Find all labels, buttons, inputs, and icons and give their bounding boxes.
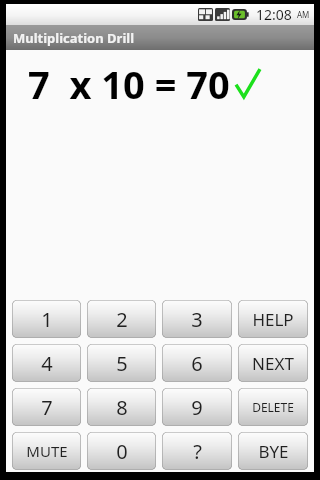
button[interactable]: BYE (238, 432, 308, 470)
staticText: MUTE (26, 441, 68, 461)
staticText: BYE (258, 440, 289, 463)
button[interactable]: 6 (162, 344, 232, 382)
button[interactable]: HELP (238, 300, 308, 338)
staticText: NEXT (252, 352, 294, 375)
staticText: DELETE (252, 399, 294, 415)
button[interactable]: NEXT (238, 344, 308, 382)
staticText: 7 x 10 = 70 (28, 58, 230, 110)
staticText: AM (297, 9, 310, 20)
staticText: ? (193, 438, 202, 465)
button[interactable]: 7 (12, 388, 81, 426)
button[interactable]: MUTE (12, 432, 81, 470)
button[interactable]: 3 (162, 300, 232, 338)
staticText: 4 (41, 350, 53, 377)
button[interactable]: 8 (87, 388, 156, 426)
staticText: 12:08 (256, 5, 292, 24)
staticText: 2 (116, 306, 128, 333)
button[interactable]: 2 (87, 300, 156, 338)
staticText: 5 (116, 350, 128, 377)
staticText: 9 (191, 394, 203, 421)
button[interactable]: 9 (162, 388, 232, 426)
button[interactable]: 4 (12, 344, 81, 382)
staticText: 1 (41, 306, 53, 333)
button[interactable]: 0 (87, 432, 156, 470)
staticText: 0 (116, 438, 128, 465)
button[interactable]: ? (162, 432, 232, 470)
staticText: 3 (191, 306, 203, 333)
button[interactable]: 5 (87, 344, 156, 382)
staticText: Multiplication Drill (13, 29, 135, 47)
button[interactable]: 1 (12, 300, 81, 338)
staticText: 7 (41, 394, 53, 421)
staticText: HELP (252, 308, 294, 331)
staticText: 8 (116, 394, 128, 421)
button[interactable]: DELETE (238, 388, 308, 426)
staticText: 6 (191, 350, 203, 377)
